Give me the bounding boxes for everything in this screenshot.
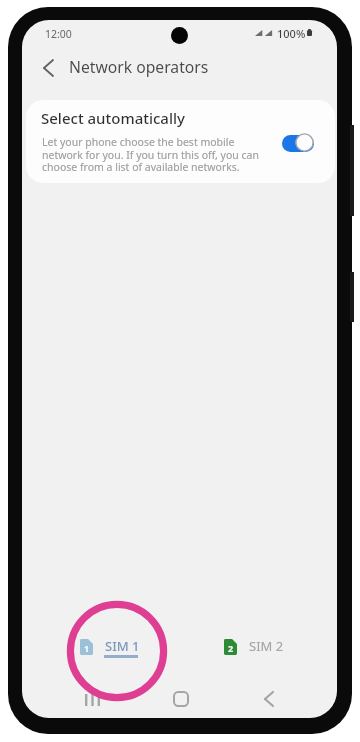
staticText: 1 (84, 642, 90, 654)
button[interactable]: Back (247, 677, 291, 718)
button[interactable]: 2 (212, 628, 296, 672)
staticText: SIM 1 (105, 637, 140, 655)
staticText: Let your phone choose the best mobile ne… (42, 135, 266, 174)
staticText: 2 (228, 642, 234, 654)
staticText: 100% (277, 26, 306, 41)
button[interactable]: Back (30, 50, 66, 86)
staticText: SIM 2 (249, 637, 284, 655)
staticText: 12:00 (45, 27, 72, 41)
button[interactable]: Select automatically (26, 100, 335, 183)
button[interactable]: 1 (68, 628, 152, 672)
button[interactable]: Select automatically toggle (280, 132, 315, 154)
staticText: Select automatically (41, 108, 185, 128)
button[interactable]: Recent apps (70, 678, 114, 718)
button[interactable]: Home (159, 677, 203, 718)
staticText: Network operators (69, 56, 209, 77)
